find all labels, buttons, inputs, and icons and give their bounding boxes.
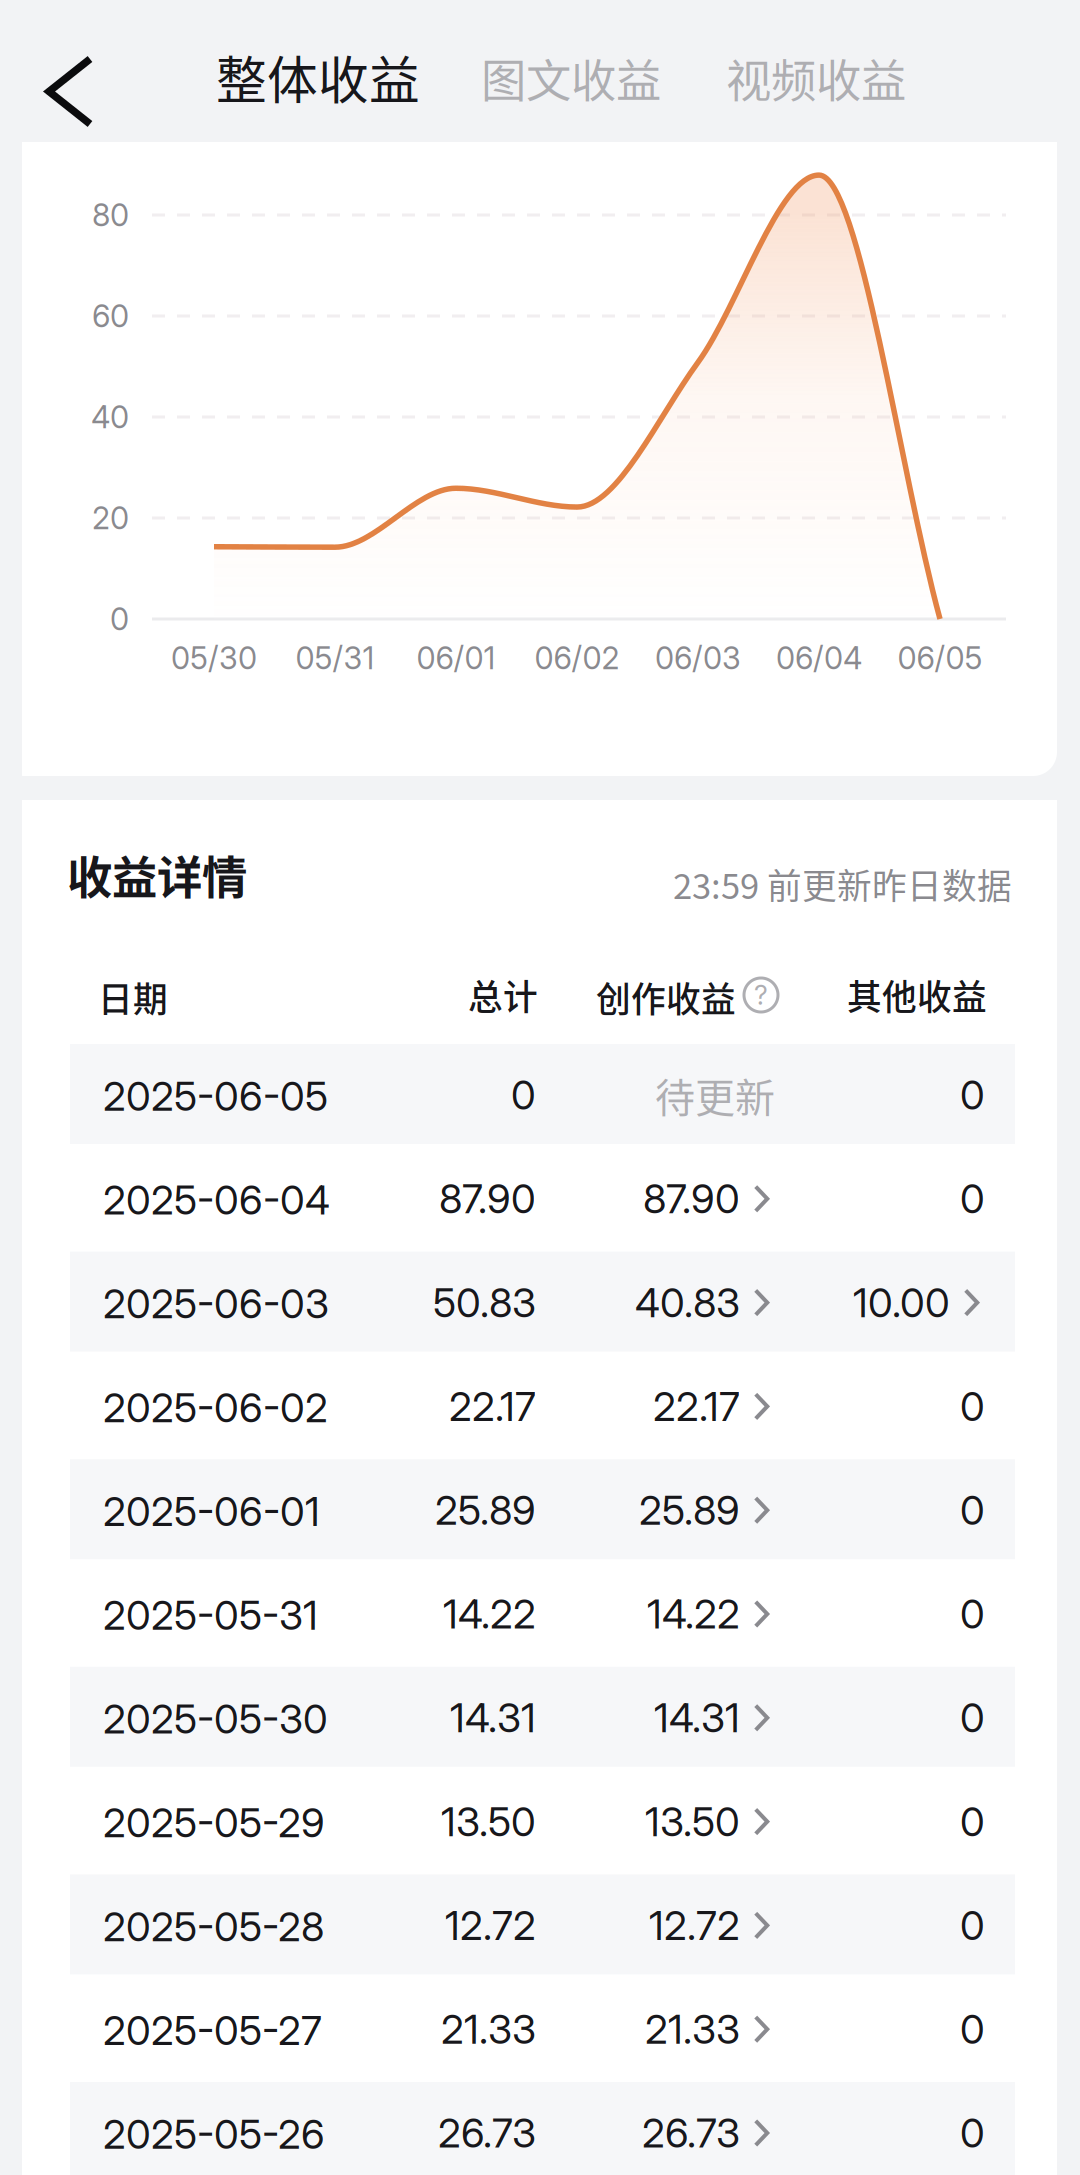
staticText: 日期 bbox=[98, 972, 168, 1022]
button[interactable]: 2025-05-28 bbox=[70, 1874, 1015, 1974]
staticText: 0 bbox=[960, 2109, 985, 2157]
staticText: 23:59 前更新昨日数据 bbox=[673, 859, 1012, 909]
staticText: 2025-05-30 bbox=[103, 1695, 328, 1743]
staticText: 40 bbox=[91, 398, 129, 435]
staticText: ? bbox=[754, 979, 768, 1011]
button[interactable]: 2025-06-04 bbox=[70, 1148, 1015, 1248]
staticText: 87.90 bbox=[439, 1175, 536, 1223]
staticText: 14.22 bbox=[647, 1590, 740, 1638]
staticText: 总计 bbox=[468, 970, 538, 1020]
staticText: 06/02 bbox=[534, 639, 619, 676]
staticText: 0 bbox=[960, 2005, 985, 2053]
staticText: 0 bbox=[960, 1382, 985, 1431]
button[interactable]: 2025-05-27 bbox=[70, 1978, 1015, 2078]
staticText: 06/05 bbox=[897, 639, 982, 676]
staticText: 21.33 bbox=[441, 2005, 536, 2053]
staticText: 14.31 bbox=[654, 1694, 740, 1742]
button[interactable]: 2025-06-02 bbox=[70, 1355, 1015, 1455]
staticText: 2025-05-28 bbox=[103, 1902, 324, 1951]
staticText: 80 bbox=[92, 196, 129, 233]
staticText: 26.73 bbox=[642, 2109, 740, 2157]
staticText: 创作收益 bbox=[596, 972, 736, 1022]
button[interactable]: 2025-05-30 bbox=[70, 1667, 1015, 1767]
staticText: 20 bbox=[92, 499, 129, 536]
button[interactable]: 2025-05-31 bbox=[70, 1563, 1015, 1663]
button[interactable]: 2025-06-05 bbox=[70, 1044, 1015, 1144]
staticText: 2025-05-31 bbox=[103, 1591, 318, 1639]
staticText: 2025-06-02 bbox=[103, 1383, 328, 1432]
staticText: 0 bbox=[960, 1694, 985, 1742]
button[interactable]: 2025-05-29 bbox=[70, 1771, 1015, 1871]
staticText: 12.72 bbox=[445, 1901, 536, 1950]
staticText: 22.17 bbox=[653, 1382, 740, 1431]
staticText: 21.33 bbox=[645, 2005, 740, 2053]
button[interactable]: 2025-06-03 bbox=[70, 1252, 1015, 1352]
button[interactable]: 图文收益 bbox=[481, 50, 671, 106]
staticText: 2025-06-03 bbox=[103, 1280, 329, 1328]
button[interactable]: 整体收益 bbox=[216, 46, 432, 108]
staticText: 2025-05-29 bbox=[103, 1799, 325, 1847]
staticText: 12.72 bbox=[649, 1901, 740, 1950]
staticText: 25.89 bbox=[639, 1486, 740, 1534]
staticText: 0 bbox=[511, 1071, 536, 1119]
staticText: 26.73 bbox=[438, 2109, 536, 2157]
staticText: 05/30 bbox=[171, 639, 257, 676]
staticText: 06/04 bbox=[776, 639, 862, 676]
staticText: 0 bbox=[960, 1590, 985, 1638]
staticText: 13.50 bbox=[441, 1797, 536, 1846]
staticText: 60 bbox=[92, 297, 129, 334]
staticText: 2025-06-05 bbox=[103, 1072, 328, 1120]
staticText: 14.31 bbox=[450, 1694, 536, 1742]
staticText: 0 bbox=[960, 1486, 985, 1534]
button[interactable]: 返回 bbox=[20, 30, 120, 154]
staticText: 0 bbox=[960, 1175, 985, 1223]
staticText: 2025-05-26 bbox=[103, 2110, 325, 2158]
staticText: 0 bbox=[960, 1071, 985, 1119]
staticText: 87.90 bbox=[643, 1175, 740, 1223]
staticText: 待更新 bbox=[655, 1066, 775, 1124]
staticText: 22.17 bbox=[449, 1382, 536, 1431]
staticText: 25.89 bbox=[435, 1486, 536, 1534]
staticText: 0 bbox=[960, 1797, 985, 1846]
button[interactable]: 2025-05-26 bbox=[70, 2082, 1015, 2175]
staticText: 整体收益 bbox=[216, 40, 420, 114]
staticText: 图文收益 bbox=[481, 45, 661, 111]
button[interactable]: 视频收益 bbox=[726, 50, 916, 106]
button[interactable]: 2025-06-01 bbox=[70, 1459, 1015, 1559]
staticText: 2025-06-04 bbox=[103, 1176, 330, 1224]
staticText: 14.22 bbox=[443, 1590, 536, 1638]
staticText: 0 bbox=[960, 1901, 985, 1950]
staticText: 其他收益 bbox=[847, 970, 987, 1020]
staticText: 40.83 bbox=[635, 1278, 740, 1327]
staticText: 10.00 bbox=[853, 1278, 950, 1327]
staticText: 视频收益 bbox=[726, 45, 906, 111]
staticText: 06/01 bbox=[416, 639, 495, 676]
staticText: 2025-06-01 bbox=[103, 1487, 320, 1536]
staticText: 2025-05-27 bbox=[103, 2006, 322, 2055]
staticText: 05/31 bbox=[295, 639, 374, 676]
staticText: 0 bbox=[110, 600, 129, 637]
staticText: 50.83 bbox=[433, 1278, 536, 1327]
staticText: 06/03 bbox=[655, 639, 741, 676]
staticText: 收益详情 bbox=[67, 842, 247, 908]
staticText: 13.50 bbox=[645, 1797, 740, 1846]
